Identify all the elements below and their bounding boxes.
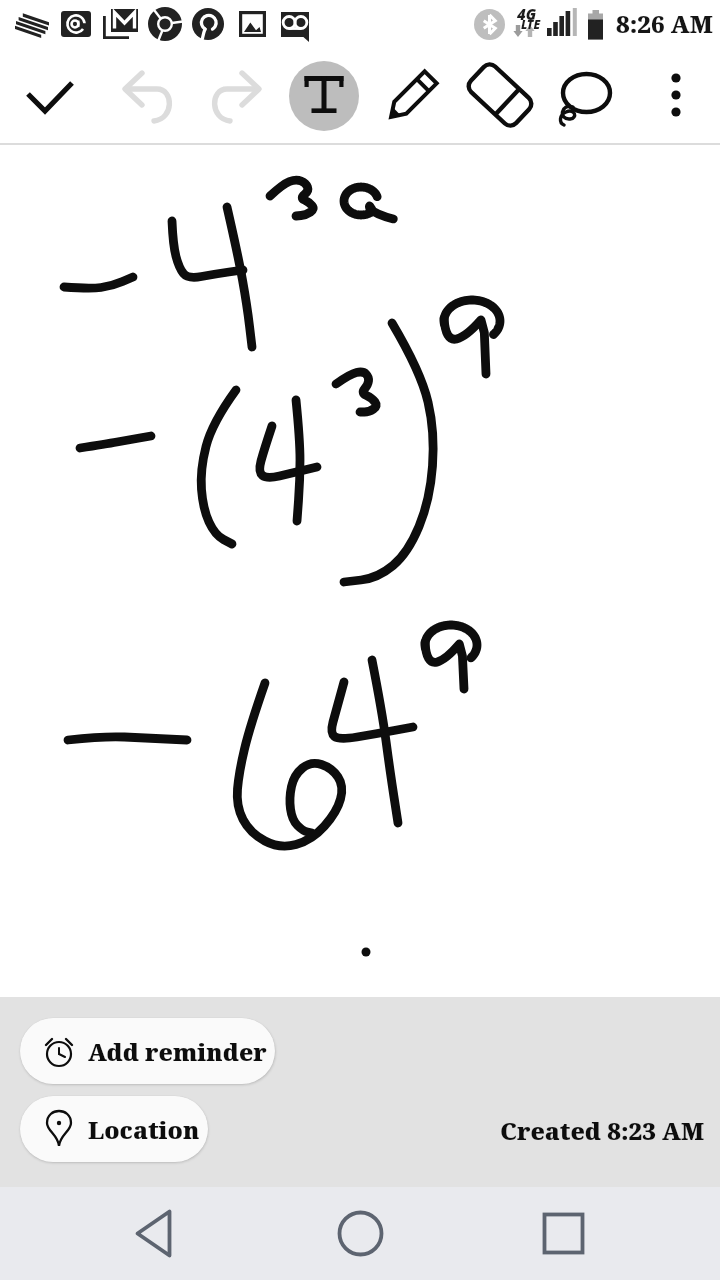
staticText: Add reminder xyxy=(88,1035,267,1068)
button[interactable]: Pen xyxy=(358,53,446,141)
button[interactable]: Text tool xyxy=(270,53,358,141)
button[interactable]: More options xyxy=(636,53,720,141)
staticText: Created 8:23 AM xyxy=(500,1114,705,1147)
staticText: 8:26 AM xyxy=(616,7,713,40)
button[interactable]: Eraser xyxy=(446,53,534,141)
staticText: LTE xyxy=(521,16,541,32)
button[interactable]: Location xyxy=(20,1096,208,1162)
button[interactable]: Recent apps xyxy=(517,1187,610,1280)
button[interactable]: Done xyxy=(6,53,94,141)
staticText: Location xyxy=(88,1113,200,1146)
button[interactable]: Add reminder xyxy=(20,1018,275,1084)
button[interactable]: Home xyxy=(314,1187,407,1280)
staticText: 4G xyxy=(517,4,537,24)
button[interactable]: Back xyxy=(110,1187,203,1280)
button[interactable]: Redo xyxy=(182,53,270,141)
button[interactable]: Lasso select xyxy=(534,53,622,141)
button[interactable]: Undo xyxy=(94,53,182,141)
